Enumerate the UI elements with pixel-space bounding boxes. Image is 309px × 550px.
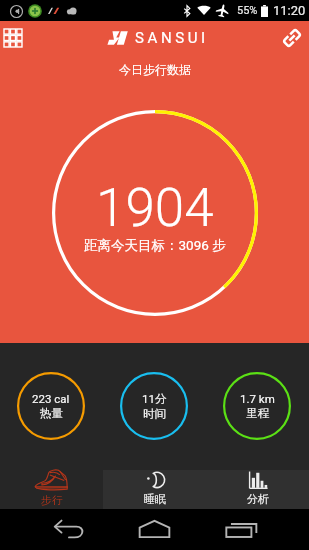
staticText: 里程 [246, 406, 269, 420]
button[interactable]: 223 cal [17, 372, 85, 440]
staticText: SANSUI [135, 29, 209, 47]
staticText: 11:20 [273, 3, 306, 18]
staticText: 223 cal [32, 392, 70, 405]
staticText: 今日步行数据 [119, 62, 191, 77]
staticText: 步行 [41, 493, 63, 507]
button[interactable]: Apps [4, 29, 22, 47]
button[interactable]: Link [281, 27, 303, 49]
button[interactable]: Recents [225, 521, 258, 538]
button[interactable]: Home [138, 520, 171, 538]
button[interactable]: Back [52, 519, 86, 539]
staticText: 1.7 km [240, 392, 275, 405]
button[interactable]: 分析 [206, 460, 309, 509]
button[interactable]: 步行 [0, 460, 103, 509]
button[interactable]: 11分 [120, 372, 188, 440]
staticText: 分析 [247, 492, 269, 506]
button[interactable]: 1.7 km [223, 372, 291, 440]
staticText: 11分 [142, 392, 167, 406]
staticText: 1904 [96, 177, 214, 239]
staticText: 热量 [40, 406, 63, 420]
staticText: 55% [237, 4, 258, 17]
staticText: 时间 [143, 407, 166, 421]
staticText: 睡眠 [144, 492, 166, 506]
button[interactable]: 睡眠 [103, 460, 206, 509]
staticText: 距离今天目标：3096 步 [84, 237, 226, 254]
